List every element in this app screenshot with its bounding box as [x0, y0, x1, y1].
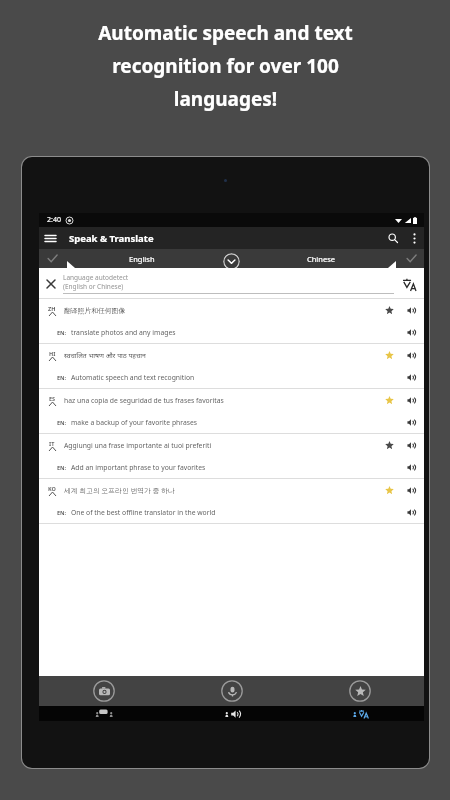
staticText: (English or Chinese): [63, 282, 124, 291]
staticText: 翻译照片和任何图像: [64, 306, 378, 315]
staticText: IT: [49, 440, 55, 447]
button[interactable]: Favorite: [378, 434, 400, 456]
button[interactable]: Favorite: [378, 389, 400, 411]
button[interactable]: More options: [404, 228, 424, 248]
staticText: translate photos and any images: [71, 328, 378, 337]
staticText: 2:40: [47, 215, 61, 225]
button[interactable]: Search: [382, 227, 404, 249]
staticText: EN:: [57, 374, 67, 381]
button[interactable]: Confirm target: [398, 249, 424, 268]
button[interactable]: Speak translation: [400, 321, 422, 343]
staticText: Language autodetect: [63, 273, 129, 282]
button[interactable]: Clear: [39, 272, 63, 296]
button[interactable]: Favorite: [378, 479, 400, 501]
staticText: make a backup of your favorite phrases: [71, 418, 378, 427]
staticText: ES: [49, 395, 56, 402]
button[interactable]: Chinese: [243, 249, 398, 268]
staticText: EN:: [57, 419, 67, 426]
button[interactable]: Speak source: [400, 434, 422, 456]
button[interactable]: Translate: [394, 269, 424, 299]
button[interactable]: Favorite: [378, 299, 400, 321]
staticText: ZH: [48, 305, 56, 312]
staticText: haz una copia de seguridad de tus frases…: [64, 396, 378, 405]
button[interactable]: Speak source: [400, 299, 422, 321]
button[interactable]: Conversation: [39, 706, 168, 721]
staticText: KO: [48, 485, 56, 492]
staticText: 세계 최고의 오프라인 번역가 중 하나: [64, 486, 378, 495]
staticText: Automatic speech and text recognition: [71, 373, 378, 382]
button[interactable]: Speak translation: [400, 366, 422, 388]
staticText: EN:: [57, 509, 67, 516]
button[interactable]: ES: [39, 389, 424, 434]
button[interactable]: KO: [39, 479, 424, 524]
staticText: Chinese: [307, 254, 335, 264]
button[interactable]: Menu: [39, 227, 61, 249]
button[interactable]: Speak translation: [400, 411, 422, 433]
button[interactable]: Confirm source: [39, 249, 65, 268]
button[interactable]: Text translate: [296, 706, 424, 721]
staticText: One of the best offline translator in th…: [71, 508, 378, 517]
button[interactable]: Swap languages: [223, 253, 240, 270]
button[interactable]: Favorites: [296, 676, 424, 706]
staticText: स्वचालित भाषण और पाठ पहचान: [64, 351, 378, 360]
button[interactable]: Speak source: [400, 389, 422, 411]
staticText: Speak & Translate: [69, 232, 154, 245]
staticText: Automatic speech and text recognition fo…: [98, 20, 353, 111]
button[interactable]: Speak translation: [400, 501, 422, 523]
button[interactable]: Voice translate: [168, 706, 296, 721]
staticText: EN:: [57, 329, 67, 336]
button[interactable]: Speak source: [400, 344, 422, 366]
button[interactable]: HI: [39, 344, 424, 389]
button[interactable]: Favorite: [378, 344, 400, 366]
staticText: Aggiungi una frase importante ai tuoi pr…: [64, 441, 378, 450]
button[interactable]: Microphone: [168, 676, 296, 706]
button[interactable]: Speak translation: [400, 456, 422, 478]
button[interactable]: IT: [39, 434, 424, 479]
button[interactable]: Camera: [39, 676, 168, 706]
button[interactable]: ZH: [39, 299, 424, 344]
staticText: English: [129, 254, 155, 264]
staticText: HI: [49, 350, 56, 357]
staticText: Add an important phrase to your favorite…: [71, 463, 378, 472]
button[interactable]: English: [65, 249, 219, 268]
staticText: EN:: [57, 464, 67, 471]
button[interactable]: Speak source: [400, 479, 422, 501]
